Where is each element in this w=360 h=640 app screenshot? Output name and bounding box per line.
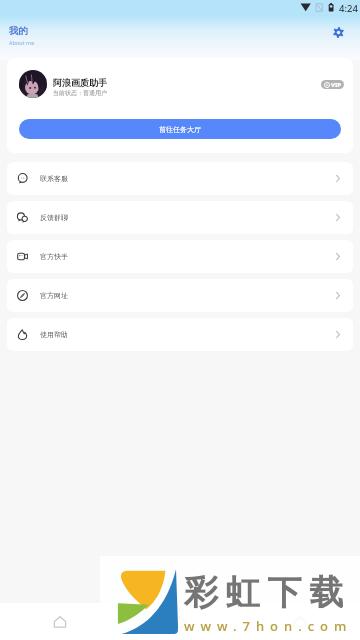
staticText: VIP	[331, 81, 341, 89]
staticText: 阿浪画质助手	[53, 77, 107, 88]
button[interactable]: Profile	[240, 603, 360, 640]
button[interactable]: 官方快手	[7, 240, 353, 273]
staticText: 前往任务大厅	[159, 125, 201, 134]
staticText: 官方快手	[40, 252, 68, 261]
button[interactable]: 使用帮助	[7, 318, 353, 351]
staticText: 我的	[9, 25, 28, 37]
staticText: 使用帮助	[40, 330, 68, 339]
staticText: 联系客服	[40, 174, 68, 183]
button[interactable]: Settings	[329, 23, 347, 41]
button[interactable]: 官方网址	[7, 279, 353, 312]
button[interactable]: VIP	[324, 80, 341, 89]
button[interactable]: 联系客服	[7, 162, 353, 195]
button[interactable]: 反馈群聊	[7, 201, 353, 234]
staticText: 反馈群聊	[40, 213, 68, 222]
button[interactable]: Home	[0, 603, 120, 640]
staticText: 当前状态：普通用户	[53, 89, 107, 97]
staticText: www.7hon.com	[184, 617, 353, 635]
staticText: 4:24	[339, 2, 358, 15]
staticText: 官方网址	[40, 291, 68, 300]
button[interactable]: 前往任务大厅	[19, 119, 341, 139]
staticText: About me	[9, 39, 35, 46]
button[interactable]: Tools	[120, 603, 240, 640]
staticText: 彩虹下载	[184, 571, 352, 614]
button[interactable]: 阿浪画质助手	[19, 58, 344, 110]
